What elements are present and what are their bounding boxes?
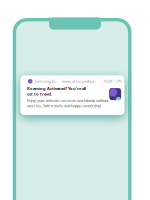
staticText: Enjoy your telecom services worldwide wi…	[27, 98, 108, 108]
staticText: www.vla.in.yadhya...	[62, 79, 97, 84]
button[interactable]: Samsung In...	[20, 75, 124, 115]
staticText: 10:41	[103, 79, 112, 84]
staticText: Samsung In...	[35, 79, 58, 84]
staticText: Roaming Activated! You're all set to tra…	[27, 86, 86, 96]
